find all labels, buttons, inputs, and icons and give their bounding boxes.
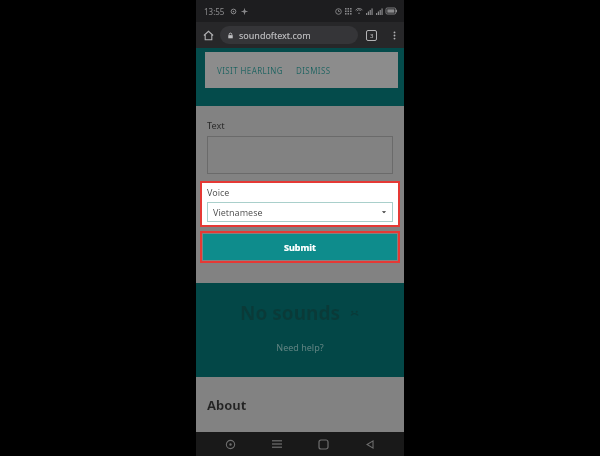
button[interactable]: Home: [311, 432, 335, 456]
staticText: Text: [207, 119, 225, 131]
button[interactable]: Home: [196, 23, 220, 47]
staticText: Submit: [284, 241, 316, 253]
staticText: No sounds: [240, 300, 340, 326]
staticText: soundoftext.com: [239, 29, 311, 41]
button[interactable]: VISIT HEARLING: [205, 52, 398, 88]
staticText: Vietnamese: [213, 206, 263, 218]
staticText: Voice: [207, 186, 230, 198]
staticText: About: [207, 396, 247, 414]
button[interactable]: Recents: [265, 432, 289, 456]
button[interactable]: Vietnamese: [207, 202, 393, 222]
button[interactable]: Assistant: [218, 432, 242, 456]
button[interactable]: Need help?: [276, 341, 324, 353]
button[interactable]: Submit: [203, 234, 397, 260]
button[interactable]: DISMISS: [296, 65, 331, 76]
button[interactable]: Voice: [200, 181, 400, 227]
button[interactable]: Back: [358, 432, 382, 456]
button[interactable]: [207, 136, 393, 174]
staticText: 3: [370, 32, 374, 40]
button[interactable]: Tabs: [358, 22, 384, 48]
staticText: 13:55: [204, 6, 225, 17]
button[interactable]: VISIT HEARLING: [217, 65, 284, 76]
button[interactable]: More options: [384, 25, 404, 45]
button[interactable]: soundoftext.com: [220, 26, 358, 44]
